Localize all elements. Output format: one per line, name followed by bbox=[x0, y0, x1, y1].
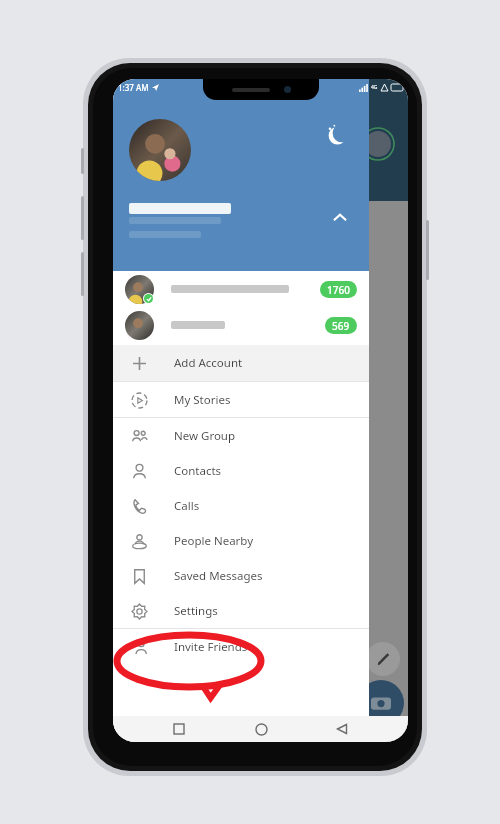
button[interactable]: 1760 bbox=[113, 271, 369, 307]
staticText: 1760 bbox=[327, 283, 350, 297]
staticText: 1:37 AM bbox=[118, 82, 149, 93]
button[interactable]: Night mode bbox=[322, 119, 352, 149]
staticText: 9:2 bbox=[311, 342, 324, 354]
staticText: Settings bbox=[174, 603, 218, 619]
button[interactable]: Recent apps bbox=[169, 719, 189, 739]
button[interactable]: Back bbox=[332, 719, 352, 739]
staticText: Add Account bbox=[174, 355, 243, 371]
staticText: Contacts bbox=[174, 463, 222, 479]
staticText: People Nearby bbox=[174, 533, 254, 549]
button[interactable]: Compose bbox=[366, 642, 400, 676]
button[interactable]: Contacts bbox=[113, 453, 369, 488]
button[interactable]: People Nearby bbox=[113, 523, 369, 558]
button[interactable]: New Group bbox=[113, 418, 369, 453]
staticText: Invite Friends bbox=[174, 639, 248, 655]
button[interactable]: Camera bbox=[358, 680, 404, 726]
button[interactable]: Add Account bbox=[113, 345, 369, 381]
button[interactable]: Home bbox=[251, 719, 271, 739]
staticText: 569 bbox=[332, 319, 350, 333]
button[interactable]: Collapse accounts bbox=[325, 203, 355, 233]
button[interactable]: Saved Messages bbox=[113, 558, 369, 593]
button[interactable]: Invite Friends bbox=[113, 629, 369, 664]
button[interactable]: Calls bbox=[113, 488, 369, 523]
staticText: My Stories bbox=[174, 392, 231, 408]
button[interactable]: Settings bbox=[113, 593, 369, 628]
staticText: 4G bbox=[371, 84, 378, 91]
button[interactable]: My Stories bbox=[113, 382, 369, 417]
staticText: Calls bbox=[174, 498, 200, 514]
button[interactable]: 569 bbox=[113, 307, 369, 343]
staticText: 11:1 bbox=[311, 297, 329, 309]
staticText: New Group bbox=[174, 428, 236, 444]
staticText: 1:3 bbox=[311, 261, 324, 273]
staticText: ul ta… bbox=[311, 309, 343, 324]
staticText: Saved Messages bbox=[174, 568, 263, 584]
